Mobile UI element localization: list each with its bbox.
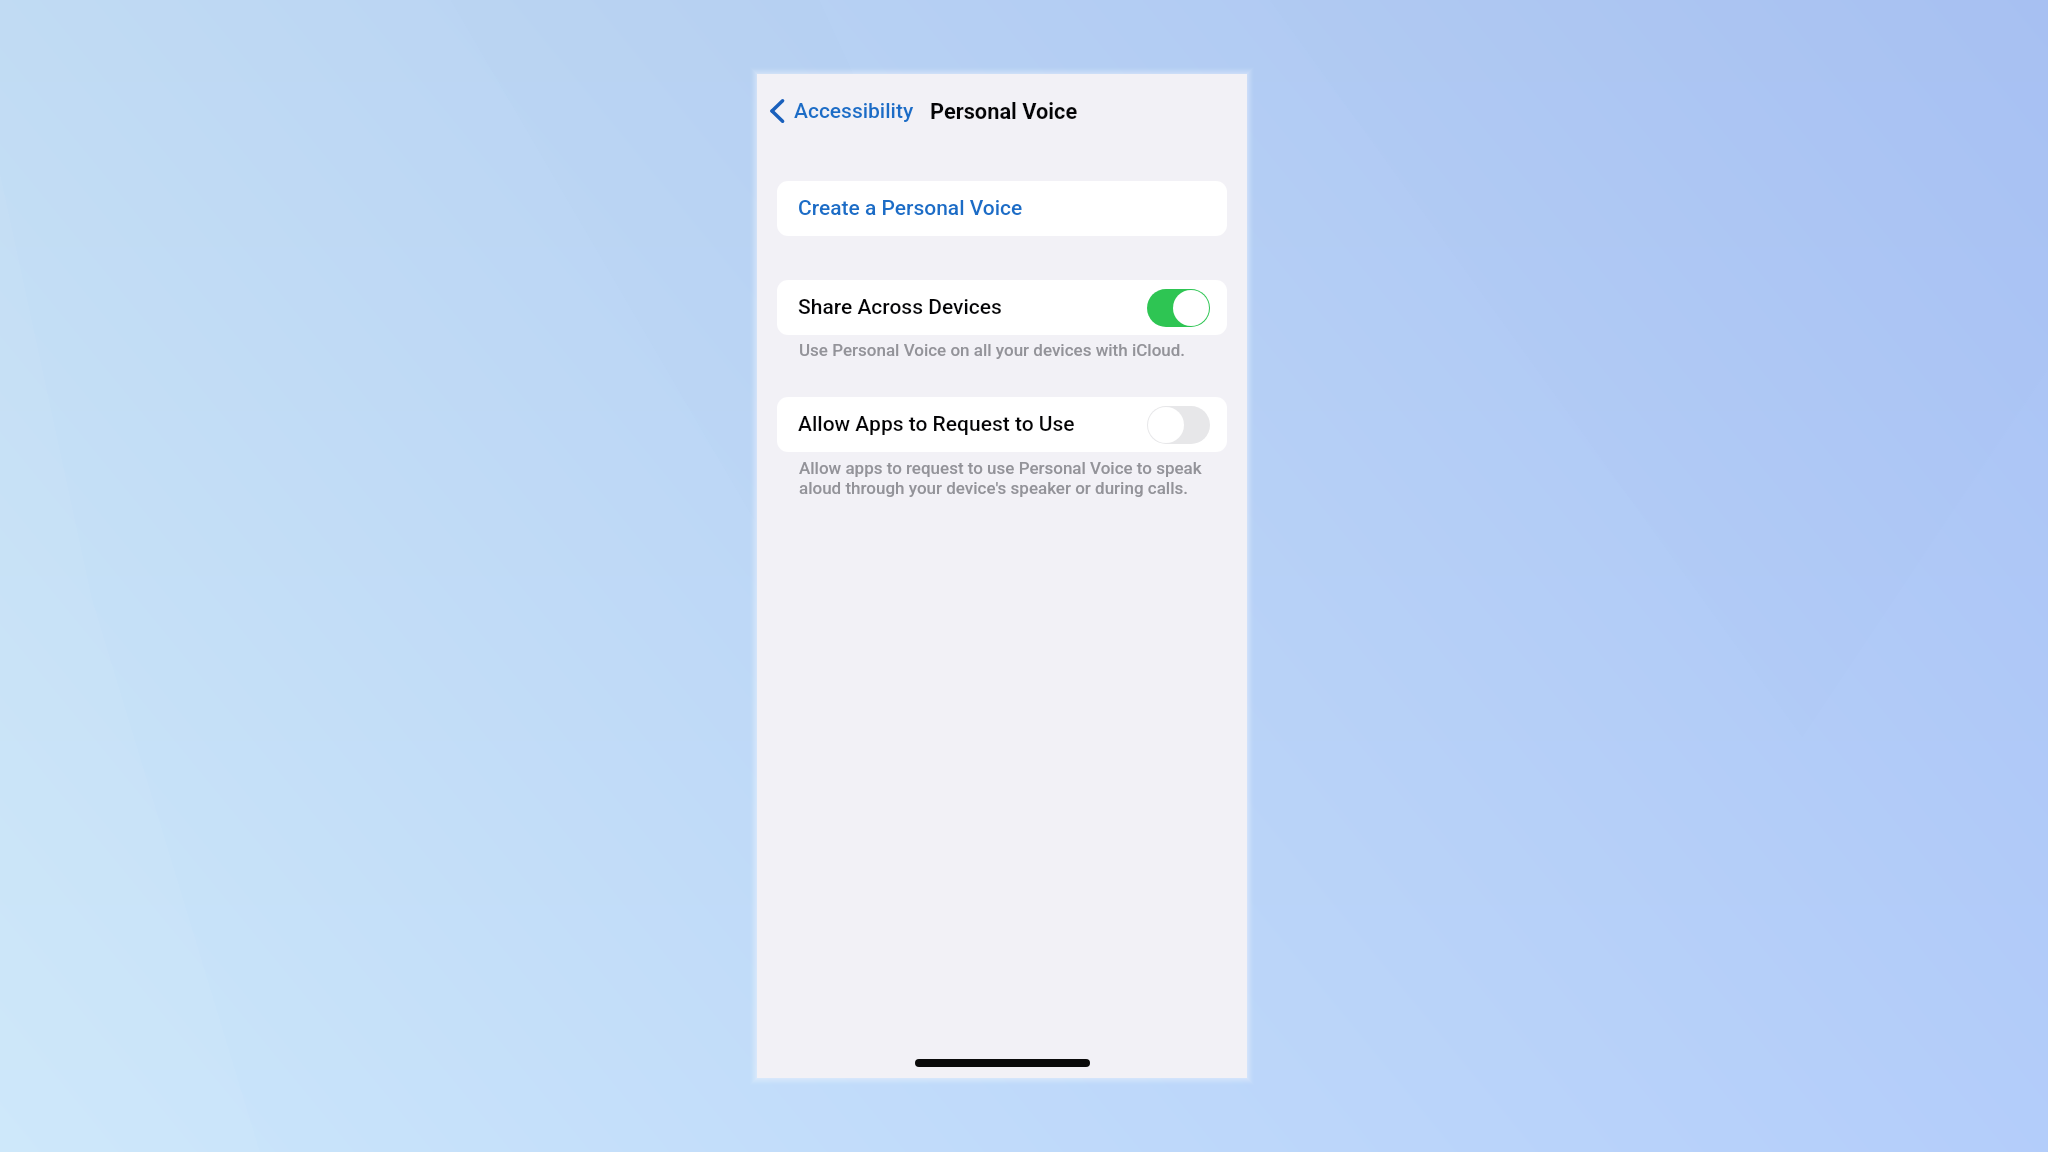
staticText: Accessibility [794,99,914,124]
button[interactable]: Allow Apps to Request to Use [777,397,1227,452]
button[interactable]: Allow Apps to Request to Use, off [1147,406,1210,444]
staticText: Allow Apps to Request to Use [798,412,1075,437]
staticText: Create a Personal Voice [798,196,1023,221]
button[interactable]: Back to Accessibility [765,95,918,127]
button[interactable]: Share Across Devices, on [1147,289,1210,327]
staticText: Personal Voice [930,99,1078,125]
staticText: Share Across Devices [798,295,1002,320]
staticText: Allow apps to request to use Personal Vo… [799,458,1211,498]
staticText: Use Personal Voice on all your devices w… [799,340,1186,360]
button[interactable]: Share Across Devices [777,280,1227,335]
button[interactable]: Create a Personal Voice [777,181,1227,236]
